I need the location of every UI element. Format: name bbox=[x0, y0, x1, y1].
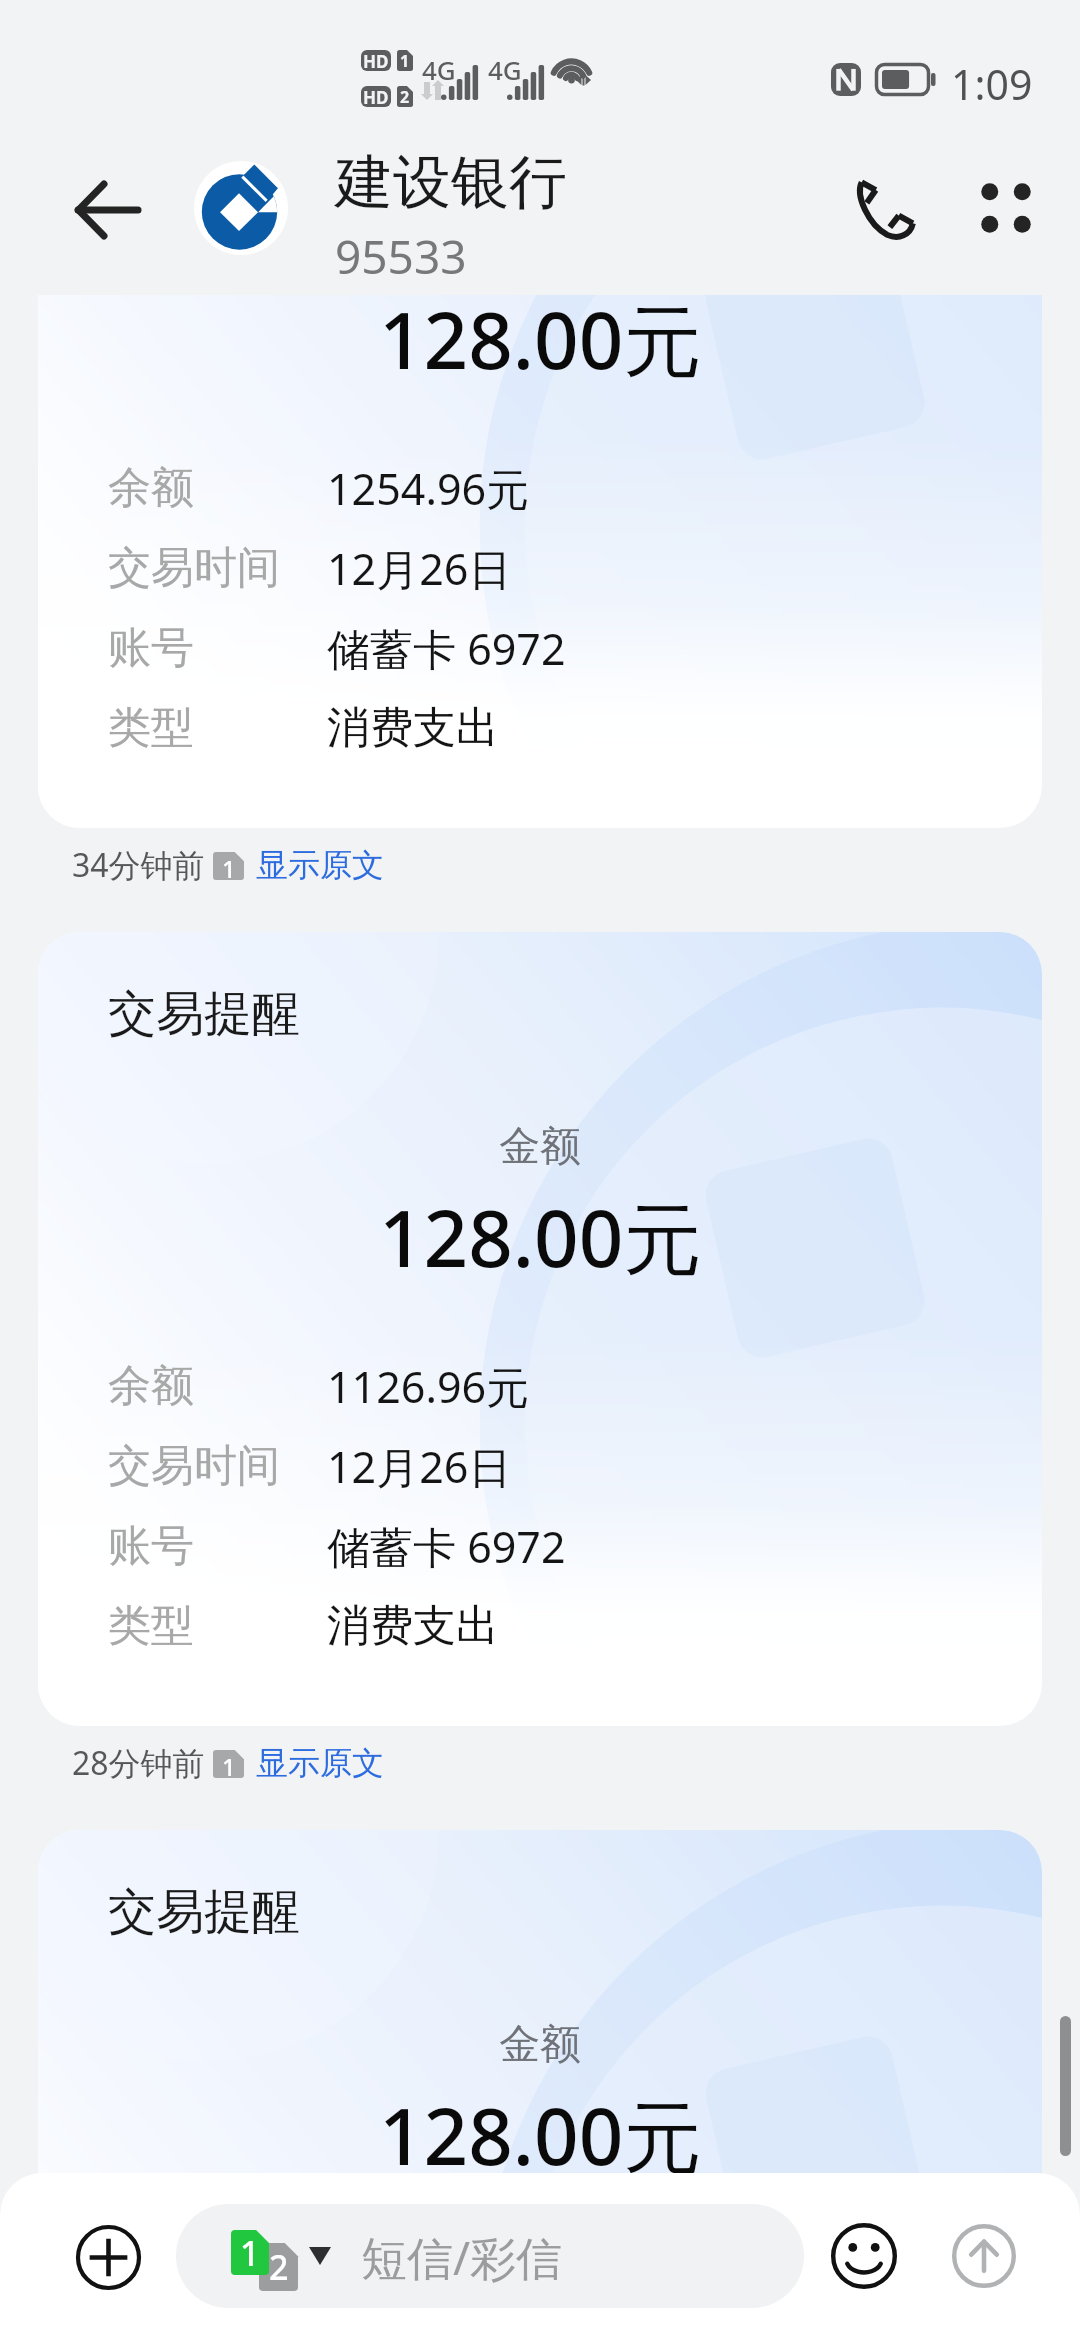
button[interactable]: 显示原文 bbox=[256, 1743, 384, 1783]
button[interactable]: More options bbox=[946, 148, 1066, 268]
staticText: 账号 bbox=[108, 1519, 327, 1573]
button[interactable]: Back bbox=[47, 150, 167, 270]
button[interactable]: Send bbox=[924, 2196, 1044, 2316]
staticText: 1 bbox=[240, 2230, 260, 2275]
staticText: 34分钟前 bbox=[72, 843, 205, 887]
button[interactable]: 交易提醒 bbox=[38, 295, 1042, 828]
staticText: 28分钟前 bbox=[72, 1741, 205, 1785]
staticText: 1 bbox=[400, 50, 410, 71]
staticText: 消费支出 bbox=[327, 701, 499, 755]
button[interactable]: 显示原文 bbox=[256, 845, 384, 885]
staticText: 交易提醒 bbox=[108, 1882, 300, 1942]
staticText: 1:09 bbox=[951, 56, 1033, 112]
staticText: 余额 bbox=[108, 461, 327, 515]
staticText: 128.00元 bbox=[379, 2082, 702, 2189]
staticText: 1 bbox=[222, 1750, 236, 1778]
button[interactable]: Emoji bbox=[804, 2196, 924, 2316]
staticText: 账号 bbox=[108, 621, 327, 675]
button[interactable]: 2 bbox=[176, 2204, 804, 2308]
button[interactable]: 交易提醒 bbox=[38, 1830, 1042, 2340]
staticText: 建设银行 bbox=[335, 146, 567, 219]
button[interactable]: 交易提醒 bbox=[38, 932, 1042, 1726]
staticText: 2 bbox=[400, 86, 410, 107]
staticText: 12月26日 bbox=[327, 1437, 512, 1496]
staticText: 消费支出 bbox=[327, 1599, 499, 1653]
staticText: 95533 bbox=[335, 225, 467, 288]
staticText: 金额 bbox=[499, 2019, 581, 2071]
staticText: 128.00元 bbox=[379, 1184, 702, 1291]
staticText: HD bbox=[363, 86, 389, 107]
button[interactable]: Add attachment bbox=[48, 2197, 168, 2317]
staticText: 交易时间 bbox=[108, 541, 327, 595]
staticText: 显示原文 bbox=[256, 845, 384, 885]
staticText: 12月26日 bbox=[327, 539, 512, 598]
staticText: 储蓄卡 6972 bbox=[327, 619, 566, 678]
staticText: 储蓄卡 6972 bbox=[327, 1517, 566, 1576]
staticText: 余额 bbox=[108, 1359, 327, 1413]
staticText: 类型 bbox=[108, 701, 327, 755]
staticText: 128.00元 bbox=[379, 295, 702, 393]
staticText: 1254.96元 bbox=[327, 459, 530, 518]
staticText: 1 bbox=[222, 852, 236, 880]
staticText: 显示原文 bbox=[256, 1743, 384, 1783]
button[interactable]: Call bbox=[826, 148, 946, 268]
staticText: 类型 bbox=[108, 1599, 327, 1653]
staticText: 4G bbox=[488, 52, 522, 87]
staticText: 余额 bbox=[108, 2257, 327, 2311]
staticText: 4G bbox=[422, 52, 456, 87]
staticText: 1126.96元 bbox=[327, 2255, 530, 2314]
staticText: 金额 bbox=[499, 1121, 581, 1173]
staticText: 1126.96元 bbox=[327, 1357, 530, 1416]
staticText: 2 bbox=[269, 2244, 289, 2290]
staticText: 短信/彩信 bbox=[361, 2226, 563, 2289]
staticText: 交易提醒 bbox=[108, 984, 300, 1044]
staticText: HD bbox=[363, 50, 389, 71]
staticText: 交易时间 bbox=[108, 1439, 327, 1493]
